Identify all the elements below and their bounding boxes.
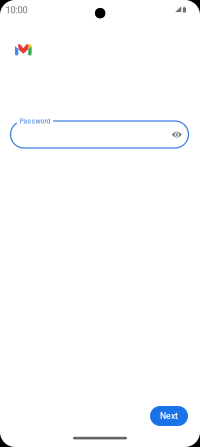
staticText: 10:00 <box>6 5 28 16</box>
button[interactable]: Show password <box>164 122 190 148</box>
button[interactable]: Next <box>150 406 188 426</box>
staticText: Next <box>160 411 178 421</box>
button[interactable]: Password <box>10 121 188 148</box>
staticText: Password <box>19 117 50 125</box>
